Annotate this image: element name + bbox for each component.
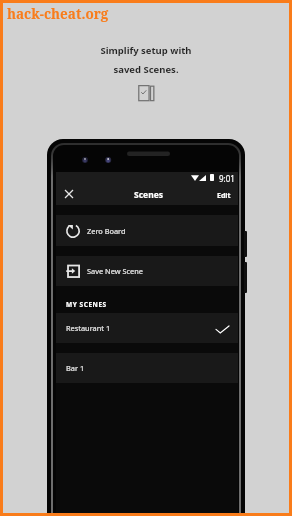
button[interactable]: Zero Board [56,215,238,246]
button[interactable]: Restaurant 1 [56,313,238,343]
staticText: MY SCENES [66,300,107,309]
staticText: Zero Board [87,226,126,236]
staticText: Scenes [134,189,164,201]
button[interactable]: Save New Scene [56,256,238,286]
staticText: Simplify setup with [100,44,192,57]
staticText: Save New Scene [87,266,143,276]
staticText: 9:01 [219,173,235,184]
staticText: saved Scenes. [113,63,179,76]
button[interactable]: Edit [210,186,238,206]
staticText: Edit [217,191,231,201]
staticText: Bar 1 [66,363,85,373]
staticText: Restaurant 1 [66,323,111,333]
button[interactable]: Bar 1 [56,353,238,383]
button[interactable]: Close [59,184,79,204]
staticText: hack-cheat.org [7,5,109,23]
